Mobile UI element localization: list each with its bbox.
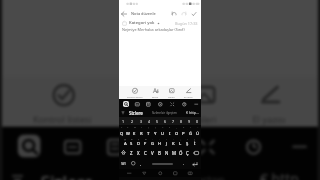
button[interactable]: Keyboard tool [102,134,125,157]
button[interactable]: = [159,125,166,137]
button[interactable]: Kontrol listesi [29,84,98,123]
button[interactable]: Biçim [151,88,160,98]
button[interactable]: Enter [188,158,201,169]
button[interactable]: Recents [171,169,180,177]
button[interactable]: Emoji [129,158,137,169]
staticText: € http... [186,110,199,115]
staticText: I [169,131,171,137]
button[interactable]: 5 [153,117,161,125]
button[interactable]: ? [166,125,173,137]
button[interactable]: $ [135,137,142,147]
button[interactable]: Split screen [186,169,195,177]
button[interactable]: Keyboard tool [60,134,83,157]
staticText: Ü [196,131,200,137]
button[interactable]: , [137,158,145,169]
button[interactable]: ) [152,125,159,137]
button[interactable]: _ [173,125,180,137]
button[interactable]: Ç [184,147,191,158]
button[interactable]: Undo [169,9,179,19]
button[interactable]: Keyboard tool [148,134,172,157]
button[interactable]: Home [156,169,165,177]
button[interactable]: Back [140,169,149,177]
button[interactable]: El yazısı [183,88,194,98]
staticText: Z [130,150,133,156]
staticText: " [166,137,167,140]
staticText: Nota düzenle [131,11,156,16]
button[interactable]: Ö [177,147,184,158]
button[interactable]: 4 [145,117,153,125]
staticText: A [124,141,127,147]
button[interactable]: ' [156,137,163,147]
button[interactable]: ( [145,125,152,137]
button[interactable]: More [193,101,199,107]
button[interactable]: ! [184,137,191,147]
button[interactable]: El yazısı [249,84,291,123]
staticText: E [133,131,136,137]
staticText: Biçim [129,111,156,123]
button[interactable]: . [180,158,188,169]
button[interactable]: Keyboard tool [169,101,175,107]
staticText: ; [180,137,181,140]
button[interactable]: Keyboard tool [134,101,140,107]
staticText: J [166,141,168,147]
button[interactable]: Z [128,147,135,158]
button[interactable]: % [131,125,138,137]
button[interactable]: !#1 [119,158,129,169]
button[interactable]: 2 [128,117,137,125]
button[interactable]: Backspace [191,147,201,158]
button[interactable]: & [142,137,149,147]
button[interactable]: 0 [193,117,201,125]
button[interactable]: Space [146,158,179,169]
button[interactable]: Shift [119,147,128,158]
staticText: & [145,137,147,140]
button[interactable]: Keyboard tool [145,101,151,107]
button[interactable]: [ [191,137,198,147]
button[interactable]: Galeri [167,88,176,98]
button[interactable]: X [135,147,142,158]
button[interactable]: Search [18,134,41,157]
button[interactable]: @ [122,137,128,147]
button[interactable]: ; [177,137,184,147]
button[interactable]: Redo [179,9,189,19]
button[interactable]: Save [189,9,199,19]
button[interactable]: 9 [185,117,193,125]
button[interactable]: # [128,137,135,147]
staticText: V [151,150,154,156]
button[interactable]: ^ [125,125,131,137]
button[interactable]: N [163,147,170,158]
staticText: ' [159,137,160,140]
button[interactable]: ~ [194,125,201,137]
button[interactable]: C [142,147,149,158]
button[interactable]: Biçim [125,84,160,123]
button[interactable]: Keyboard tool [195,134,218,157]
button[interactable]: Back [119,8,129,19]
button[interactable]: 3 [137,117,145,125]
button[interactable]: Keyboard tool [181,101,187,107]
button[interactable]: 7 [169,117,177,125]
button[interactable]: * [180,125,187,137]
button[interactable]: Keyboard tool [241,134,264,157]
button[interactable]: V [149,147,156,158]
button[interactable]: : [170,137,177,147]
button[interactable]: + [119,125,125,137]
button[interactable]: / [138,125,145,137]
button[interactable]: Galeri [187,84,222,123]
staticText: X [137,150,140,156]
button[interactable]: Hide keyboard [125,169,134,177]
button[interactable]: 1 [119,117,128,125]
button[interactable]: More [287,134,310,157]
button[interactable]: 6 [161,117,169,125]
button[interactable]: Kontrol listesi [126,88,144,98]
button[interactable]: Search [123,101,129,107]
button[interactable]: B [156,147,163,158]
button[interactable]: Options [10,173,25,180]
button[interactable]: - [149,137,156,147]
button[interactable]: Keyboard tool [157,101,163,107]
button[interactable]: " [163,137,170,147]
button[interactable]: M [170,147,177,158]
button[interactable]: 8 [177,117,185,125]
button[interactable]: Options [121,111,125,115]
button[interactable]: \ [187,125,194,137]
staticText: El yazısı [252,111,287,123]
staticText: 2 [131,119,134,124]
